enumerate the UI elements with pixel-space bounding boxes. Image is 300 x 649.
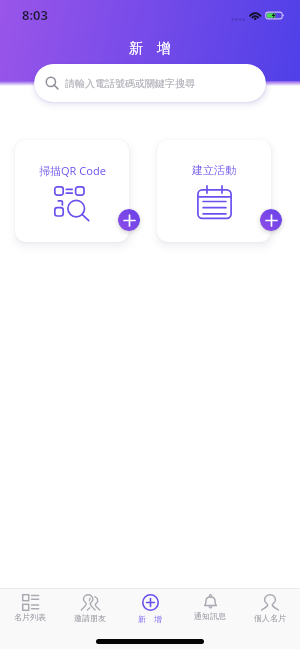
staticText: 新 增 (138, 613, 162, 624)
staticText: 8:03 (22, 6, 48, 24)
staticText: 請輸入電話號碼或關鍵字搜尋 (65, 77, 195, 90)
staticText: 通知訊息 (194, 611, 226, 621)
button[interactable]: 名片列表 (0, 594, 60, 628)
staticText: 建立活動 (192, 163, 236, 177)
button[interactable]: 請輸入電話號碼或關鍵字搜尋 (34, 64, 266, 102)
staticText: 個人名片 (254, 613, 286, 623)
button[interactable]: Add (260, 209, 282, 231)
button[interactable]: 通知訊息 (180, 594, 240, 628)
button[interactable]: 新 增 (120, 594, 180, 628)
staticText: 邀請朋友 (74, 613, 106, 623)
button[interactable]: 邀請朋友 (60, 594, 120, 628)
staticText: 掃描QR Code (39, 163, 106, 178)
staticText: 名片列表 (14, 612, 46, 622)
button[interactable]: 個人名片 (240, 594, 300, 628)
staticText: 新 增 (129, 38, 171, 57)
button[interactable]: 建立活動 (157, 140, 271, 242)
button[interactable]: 掃描QR Code (15, 140, 129, 242)
button[interactable]: Add (118, 209, 140, 231)
